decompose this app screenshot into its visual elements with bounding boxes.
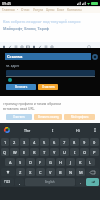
button[interactable]: Мой профиль: [64, 114, 95, 120]
button[interactable]: P: [90, 148, 99, 156]
staticText: страницу профиля и таким образом: [3, 101, 62, 105]
button[interactable]: Format tool: [32, 45, 36, 49]
button[interactable]: Format tool: [8, 45, 12, 49]
button[interactable]: Format tool: [50, 45, 54, 49]
staticText: E: [23, 150, 26, 155]
button[interactable]: 1: [1, 138, 9, 146]
button[interactable]: X: [26, 168, 35, 176]
button[interactable]: 6: [50, 138, 59, 146]
button[interactable]: Settings: [92, 54, 98, 60]
button[interactable]: 0: [90, 138, 99, 146]
button[interactable]: M: [76, 168, 85, 176]
button[interactable]: H: [56, 158, 65, 166]
staticText: Цены: [46, 8, 55, 12]
button[interactable]: Вставить: [6, 84, 36, 90]
staticText: 1: [4, 140, 7, 145]
button[interactable]: Shift: [1, 168, 15, 176]
button[interactable]: K: [76, 158, 85, 166]
button[interactable]: ?123: [1, 178, 14, 186]
button[interactable]: Услуги: [33, 8, 44, 12]
button[interactable]: Вставить ссылку: [34, 114, 62, 120]
button[interactable]: W: [10, 148, 19, 156]
staticText: 5: [43, 140, 46, 145]
button[interactable]: T: [40, 148, 49, 156]
button[interactable]: G: [46, 158, 55, 166]
button[interactable]: Enter: [86, 178, 99, 186]
button[interactable]: Y: [50, 148, 59, 156]
button[interactable]: Google: [0, 123, 14, 137]
staticText: О нас: [21, 8, 30, 12]
button[interactable]: V: [46, 168, 55, 176]
staticText: Главная: [2, 8, 15, 12]
button[interactable]: R: [30, 148, 39, 156]
staticText: Майкрофт, Блоки, Тариф: [3, 26, 50, 31]
button[interactable]: Format tool: [20, 45, 24, 49]
button[interactable]: Format tool: [26, 45, 30, 49]
button[interactable]: Очистить: [38, 84, 58, 90]
staticText: Очистить: [13, 115, 25, 119]
button[interactable]: Z: [16, 168, 25, 176]
button[interactable]: N: [66, 168, 75, 176]
button[interactable]: Period: [76, 178, 85, 186]
button[interactable]: L: [86, 158, 95, 166]
staticText: The: [24, 128, 31, 133]
button[interactable]: О нас: [21, 8, 30, 12]
button[interactable]: 8: [70, 138, 79, 146]
button[interactable]: English: [25, 178, 75, 186]
button[interactable]: E: [20, 148, 29, 156]
staticText: Y: [53, 150, 56, 155]
button[interactable]: Comma: [15, 178, 24, 186]
staticText: J: [70, 160, 72, 165]
button[interactable]: Контакты: [67, 8, 82, 12]
staticText: 0: [93, 140, 96, 145]
button[interactable]: A: [5, 158, 15, 166]
button[interactable]: Блог: [57, 8, 65, 12]
button[interactable]: 5: [40, 138, 49, 146]
staticText: R: [33, 150, 36, 155]
button[interactable]: 9: [80, 138, 89, 146]
staticText: V: [49, 170, 52, 175]
button[interactable]: S: [16, 158, 25, 166]
button[interactable]: 4: [30, 138, 39, 146]
button[interactable]: 2: [10, 138, 19, 146]
button[interactable]: •: [17, 8, 19, 12]
button[interactable]: U: [60, 148, 69, 156]
button[interactable]: Q: [1, 148, 9, 156]
button[interactable]: J: [66, 158, 75, 166]
button[interactable]: I: [70, 148, 79, 156]
staticText: O: [83, 150, 87, 155]
button[interactable]: Главная: [2, 8, 15, 12]
staticText: 9: [83, 140, 86, 145]
staticText: English: [45, 180, 55, 184]
staticText: 2: [13, 140, 16, 145]
button[interactable]: O: [80, 148, 89, 156]
button[interactable]: Format tool: [38, 45, 42, 49]
staticText: Z: [19, 170, 22, 175]
staticText: Q: [3, 150, 7, 155]
button[interactable]: More: [87, 45, 91, 49]
staticText: H: [59, 160, 62, 165]
button[interactable]: Ссылка: [5, 53, 91, 60]
button[interactable]: Цены: [46, 8, 55, 12]
staticText: X: [29, 170, 32, 175]
button[interactable]: Format tool: [14, 45, 18, 49]
button[interactable]: F: [36, 158, 45, 166]
button[interactable]: The: [14, 123, 40, 137]
staticText: F: [39, 160, 42, 165]
button[interactable]: Format tool: [2, 45, 6, 49]
button[interactable]: C: [36, 168, 45, 176]
button[interactable]: 7: [60, 138, 69, 146]
button[interactable]: B: [56, 168, 65, 176]
button[interactable]: D: [26, 158, 35, 166]
button[interactable]: Backspace: [86, 168, 99, 176]
staticText: W: [13, 150, 17, 155]
button[interactable]: Keyboard settings: [90, 123, 100, 137]
staticText: вставлять свой URL.: [3, 106, 36, 110]
button[interactable]: 3: [20, 138, 29, 146]
button[interactable]: I: [40, 123, 65, 137]
button[interactable]: Hi: [65, 123, 90, 137]
staticText: ,: [19, 180, 21, 185]
button[interactable]: Очистить: [6, 114, 32, 120]
button[interactable]: Format tool: [44, 45, 48, 49]
